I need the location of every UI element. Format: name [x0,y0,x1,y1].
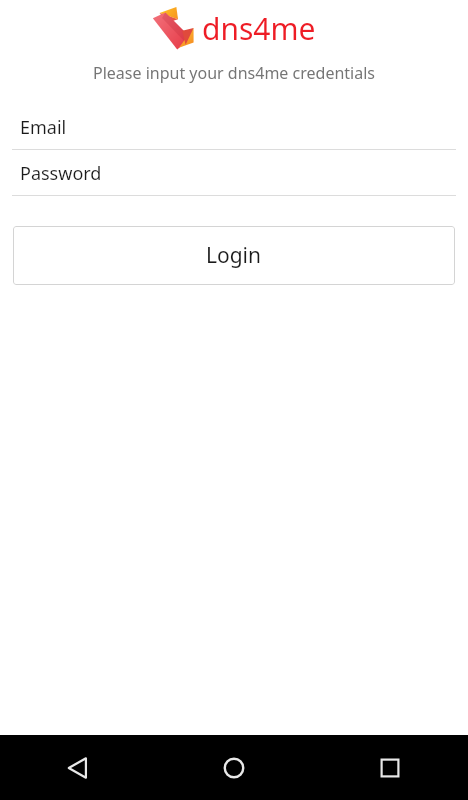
staticText: Password [20,161,102,186]
button[interactable]: Email [0,106,468,150]
staticText: Login [206,241,262,270]
staticText: Please input your dns4me credentials [0,62,468,84]
staticText: dns4me [202,8,316,49]
button[interactable]: Home [204,738,264,798]
button[interactable]: Recent apps [360,738,420,798]
button[interactable]: Back [48,738,108,798]
button[interactable]: Password [0,152,468,196]
button[interactable]: Login [13,226,455,285]
staticText: Email [20,115,67,140]
